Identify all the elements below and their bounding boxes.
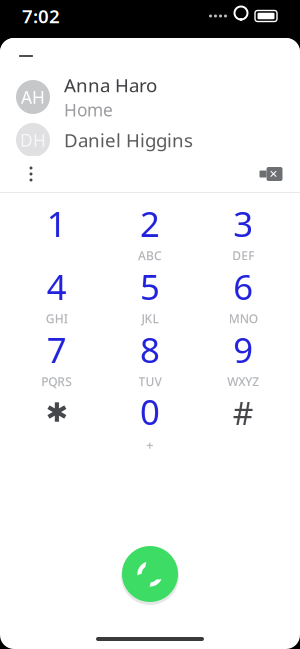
button[interactable]: 5 xyxy=(103,266,197,324)
staticText: 6 xyxy=(233,263,253,309)
staticText: 7 xyxy=(47,326,67,372)
staticText: DH xyxy=(20,128,46,151)
button[interactable]: 7 xyxy=(10,329,103,387)
staticText: WXYZ xyxy=(227,374,259,389)
staticText: TUV xyxy=(138,374,161,389)
staticText: # xyxy=(233,391,254,434)
button[interactable]: More options xyxy=(16,159,46,189)
staticText: 9 xyxy=(233,326,253,372)
button[interactable]: # xyxy=(197,392,290,450)
staticText: 4 xyxy=(47,263,67,309)
button[interactable]: 9 xyxy=(197,329,290,387)
staticText: ABC xyxy=(138,248,162,263)
staticText: JKL xyxy=(141,311,158,326)
button[interactable]: 4 xyxy=(10,266,103,324)
staticText: 1 xyxy=(47,200,67,246)
button[interactable]: DH xyxy=(0,120,300,160)
button[interactable]: 6 xyxy=(197,266,290,324)
staticText: Home xyxy=(64,98,113,121)
staticText: 8 xyxy=(140,326,160,372)
button[interactable]: Call xyxy=(117,541,183,607)
staticText: 2 xyxy=(140,200,160,246)
staticText: ✱ xyxy=(46,397,68,428)
button[interactable]: 2 xyxy=(103,203,197,261)
staticText: 7:02 xyxy=(22,4,60,28)
button[interactable]: Delete xyxy=(254,161,288,187)
button[interactable]: AH xyxy=(0,74,300,120)
staticText: 0 xyxy=(140,389,160,435)
button[interactable]: 8 xyxy=(103,329,197,387)
staticText: AH xyxy=(21,85,45,108)
button[interactable]: Close xyxy=(0,38,300,74)
staticText: GHI xyxy=(46,311,68,326)
button[interactable]: 3 xyxy=(197,203,290,261)
staticText: 5 xyxy=(140,263,160,309)
staticText: Daniel Higgins xyxy=(64,128,193,152)
button[interactable]: 1 xyxy=(10,203,103,261)
staticText: PQRS xyxy=(41,374,72,389)
staticText: MNO xyxy=(229,311,258,326)
staticText: ✕ xyxy=(269,168,278,180)
staticText: 3 xyxy=(233,200,253,246)
staticText: Anna Haro xyxy=(64,73,157,97)
button[interactable]: 0 xyxy=(103,392,197,450)
button[interactable]: ✱ xyxy=(10,392,103,450)
staticText: DEF xyxy=(232,248,254,263)
staticText: + xyxy=(146,436,154,453)
